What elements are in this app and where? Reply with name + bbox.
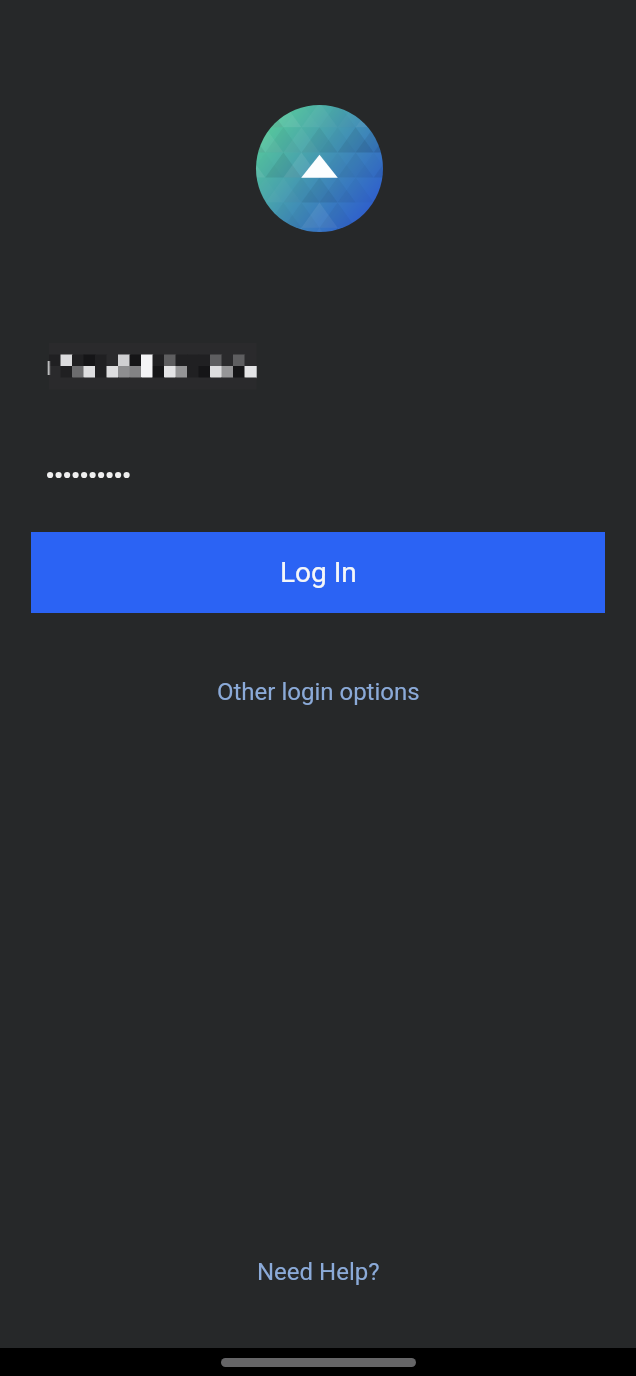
staticText: Other login options <box>217 678 420 706</box>
button[interactable] <box>0 343 636 390</box>
button[interactable] <box>0 452 636 498</box>
other: App logo <box>256 105 383 232</box>
button[interactable]: Log In <box>31 532 605 613</box>
staticText: Log In <box>280 556 357 589</box>
button[interactable]: Other login options <box>199 668 438 716</box>
staticText: Need Help? <box>257 1258 380 1286</box>
button[interactable]: Need Help? <box>239 1248 398 1296</box>
